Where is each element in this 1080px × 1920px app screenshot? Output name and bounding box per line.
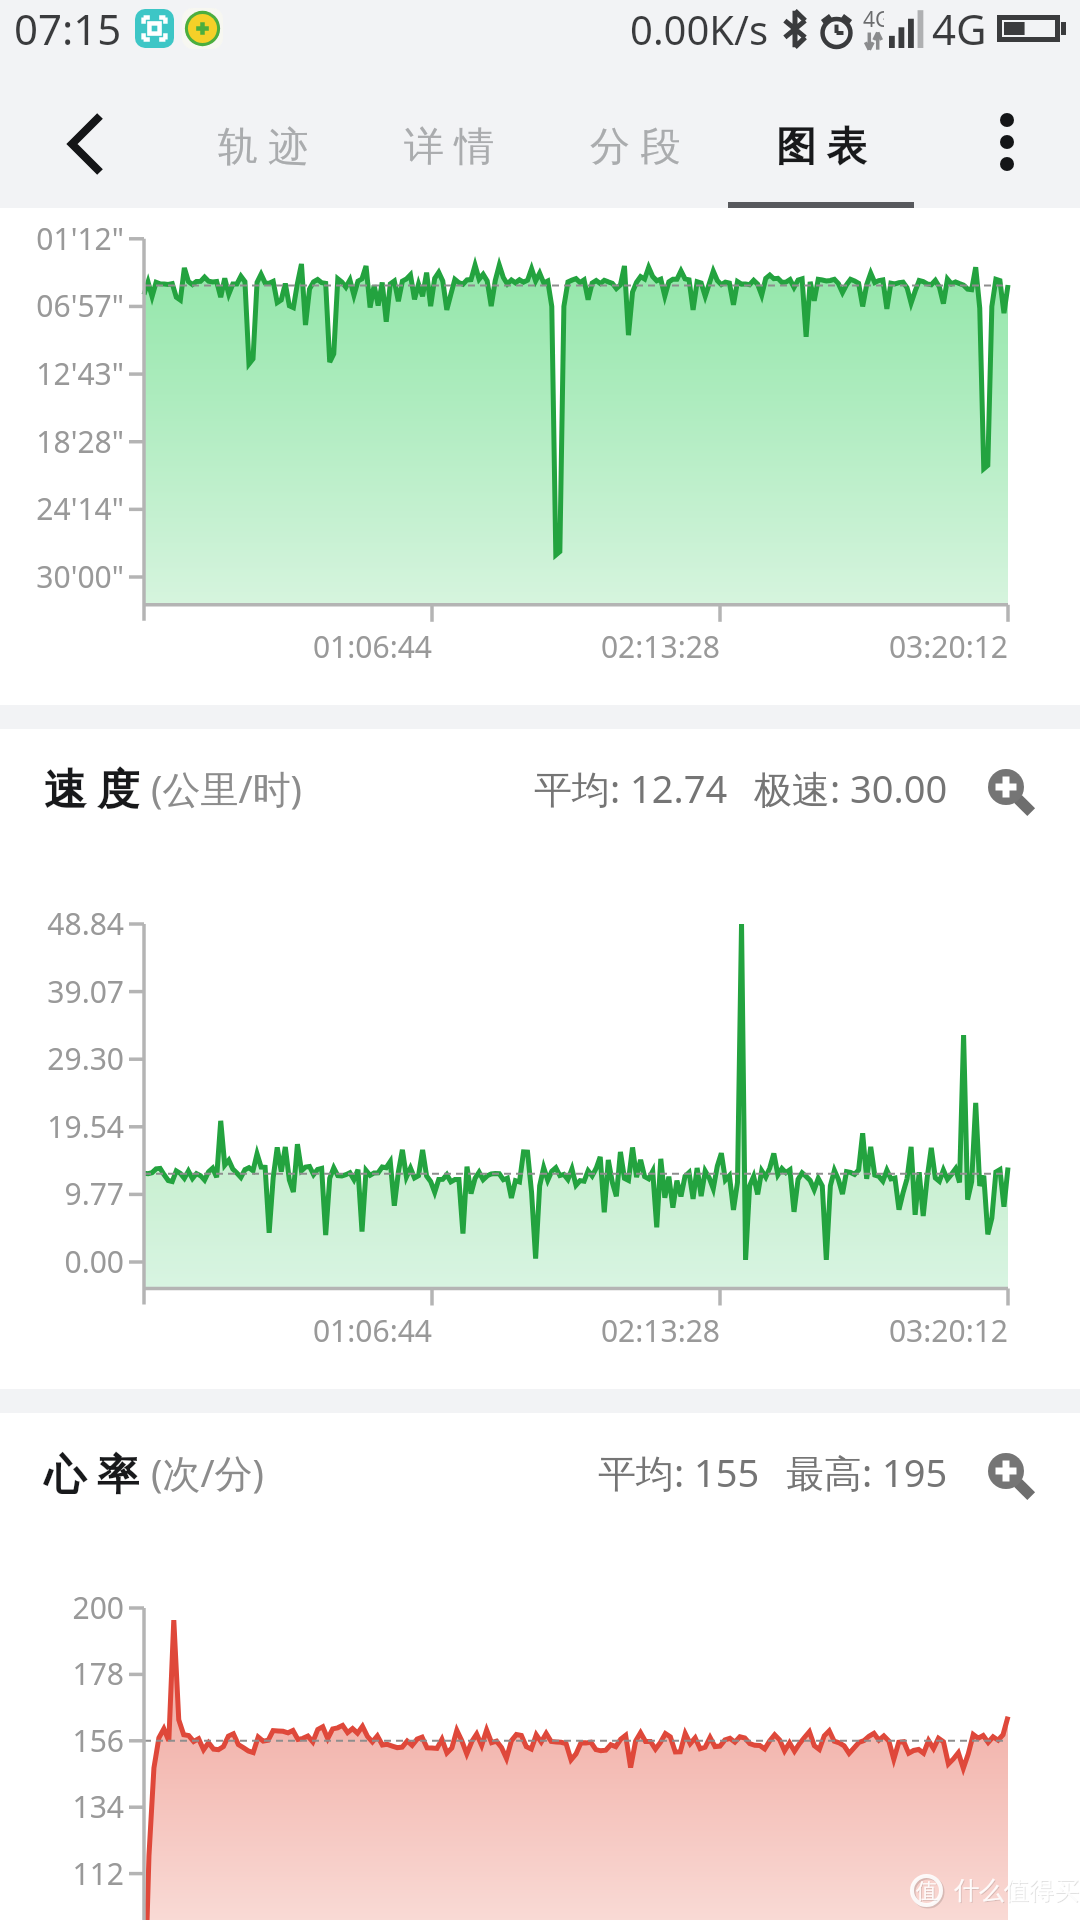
staticText: 02:13:28	[420, 626, 720, 667]
staticText: 06'57"	[0, 285, 124, 326]
button[interactable]: 分 段	[542, 80, 728, 208]
staticText: 18'28"	[0, 421, 124, 462]
staticText: 178	[0, 1653, 124, 1694]
staticText: 平均: 155	[598, 1446, 760, 1498]
staticText: 9.77	[0, 1173, 124, 1214]
staticText: 200	[0, 1587, 124, 1628]
staticText: 03:20:12	[708, 626, 1008, 667]
staticText: 值	[917, 1879, 938, 1905]
staticText: 极速: 30.00	[754, 762, 948, 814]
staticText: 03:20:12	[708, 1310, 1008, 1351]
staticText: 图 表	[776, 117, 867, 172]
staticText: (公里/时)	[151, 762, 302, 814]
staticText: 值	[916, 1878, 937, 1904]
staticText: 什么值得买	[955, 1876, 1080, 1907]
staticText: 速 度	[44, 759, 139, 816]
staticText: 平均: 12.74	[534, 762, 728, 814]
staticText: 0.00	[0, 1241, 124, 1282]
staticText: 轨 迹	[218, 117, 309, 172]
button[interactable]: 轨 迹	[170, 80, 356, 208]
button[interactable]: Back	[0, 80, 150, 208]
staticText: 4G	[932, 0, 987, 57]
staticText: 01:06:44	[132, 1310, 432, 1351]
staticText: (次/分)	[151, 1446, 264, 1498]
staticText: 19.54	[0, 1106, 124, 1147]
staticText: 0.00K/s	[630, 2, 769, 56]
staticText: 心 率	[44, 1444, 139, 1501]
staticText: 48.84	[0, 903, 124, 944]
staticText: 01:06:44	[132, 626, 432, 667]
staticText: 02:13:28	[420, 1310, 720, 1351]
staticText: 24'14"	[0, 488, 124, 529]
button[interactable]: 图 表	[728, 80, 914, 208]
staticText: 134	[0, 1786, 124, 1827]
staticText: 4G	[863, 5, 884, 34]
staticText: 112	[0, 1853, 124, 1894]
staticText: 30'00"	[0, 556, 124, 597]
button[interactable]: Zoom in	[986, 1444, 1042, 1500]
staticText: 156	[0, 1720, 124, 1761]
button[interactable]: 详 情	[356, 80, 542, 208]
staticText: 12'43"	[0, 353, 124, 394]
button[interactable]: More options	[950, 80, 1080, 208]
staticText: 01'12"	[0, 218, 124, 259]
staticText: 29.30	[0, 1038, 124, 1079]
staticText: 什么值得买	[954, 1875, 1079, 1906]
button[interactable]: Zoom in	[986, 760, 1042, 816]
staticText: 最高: 195	[786, 1446, 948, 1498]
staticText: 分 段	[590, 117, 681, 172]
staticText: 07:15	[14, 0, 122, 57]
staticText: 39.07	[0, 971, 124, 1012]
staticText: 详 情	[404, 117, 495, 172]
